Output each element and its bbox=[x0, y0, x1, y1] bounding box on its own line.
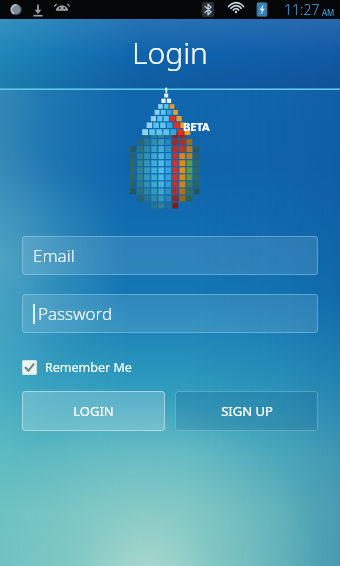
staticText: Email bbox=[33, 244, 75, 267]
staticText: AM bbox=[322, 7, 335, 18]
staticText: 11:27 bbox=[284, 0, 320, 19]
staticText: Password bbox=[38, 302, 113, 325]
button[interactable]: Password bbox=[22, 294, 318, 333]
staticText: BETA bbox=[183, 119, 210, 134]
staticText: Login bbox=[132, 32, 208, 73]
button[interactable]: Email bbox=[22, 236, 318, 275]
staticText: Remember Me bbox=[45, 359, 132, 376]
button[interactable]: Remember Me bbox=[22, 357, 132, 378]
button[interactable]: LOGIN bbox=[22, 391, 165, 431]
staticText: LOGIN bbox=[73, 402, 114, 420]
button[interactable]: SIGN UP bbox=[175, 391, 318, 431]
staticText: SIGN UP bbox=[221, 402, 273, 420]
